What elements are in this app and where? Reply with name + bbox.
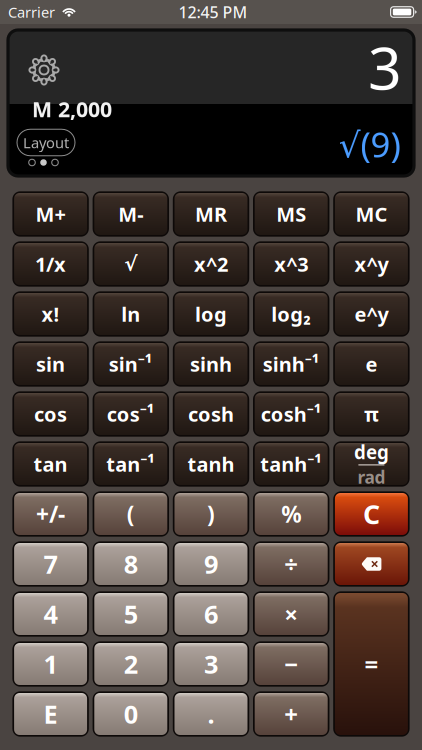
staticText: .	[207, 697, 214, 731]
button[interactable]: 9	[174, 543, 247, 585]
staticText: ÷	[284, 548, 298, 580]
button[interactable]: deg	[335, 443, 408, 485]
staticText: +	[284, 698, 298, 730]
staticText: sin	[36, 351, 65, 377]
button[interactable]: cosh⁻¹	[255, 393, 328, 435]
button[interactable]: Layout	[17, 129, 75, 156]
button[interactable]: sin	[14, 343, 87, 385]
button[interactable]: 0	[94, 693, 167, 735]
staticText: 4	[44, 597, 58, 631]
staticText: −	[284, 648, 298, 680]
button[interactable]: π	[335, 393, 408, 435]
staticText: log₂	[271, 301, 311, 327]
staticText: e	[365, 351, 377, 377]
staticText: 8	[124, 547, 138, 581]
staticText: π	[364, 401, 379, 427]
button[interactable]: ÷	[255, 543, 328, 585]
button[interactable]: 8	[94, 543, 167, 585]
staticText: √	[124, 253, 137, 275]
button[interactable]: ×	[255, 593, 328, 635]
staticText: C	[363, 496, 380, 532]
staticText: √(9)	[338, 121, 400, 167]
button[interactable]: sin⁻¹	[94, 343, 167, 385]
button[interactable]: (	[94, 493, 167, 535]
button[interactable]: log₂	[255, 293, 328, 335]
staticText: cos⁻¹	[107, 401, 155, 427]
staticText: rad	[357, 465, 385, 488]
button[interactable]: √	[94, 243, 167, 285]
button[interactable]: E	[14, 693, 87, 735]
staticText: 1	[44, 647, 58, 681]
staticText: M 2,000	[32, 95, 112, 123]
button[interactable]: x^3	[255, 243, 328, 285]
staticText: 9	[204, 547, 218, 581]
staticText: M-	[118, 201, 143, 227]
staticText: )	[207, 499, 215, 529]
button[interactable]: %	[255, 493, 328, 535]
staticText: e^y	[354, 301, 388, 327]
button[interactable]: MC	[335, 193, 408, 235]
staticText: ×	[284, 598, 298, 630]
button[interactable]: Settings	[24, 50, 64, 90]
button[interactable]: 5	[94, 593, 167, 635]
button[interactable]: x^2	[174, 243, 247, 285]
button[interactable]: tan	[14, 443, 87, 485]
staticText: cosh	[188, 401, 234, 427]
staticText: tan⁻¹	[106, 451, 155, 477]
button[interactable]: M-	[94, 193, 167, 235]
button[interactable]: +	[255, 693, 328, 735]
button[interactable]: +/-	[14, 493, 87, 535]
button[interactable]: x^y	[335, 243, 408, 285]
button[interactable]: MR	[174, 193, 247, 235]
button[interactable]: cosh	[174, 393, 247, 435]
button[interactable]: C	[335, 493, 408, 535]
staticText: 3	[368, 28, 402, 106]
button[interactable]: M+	[14, 193, 87, 235]
staticText: 3	[204, 647, 218, 681]
staticText: cosh⁻¹	[261, 401, 322, 427]
button[interactable]: 6	[174, 593, 247, 635]
button[interactable]: x!	[14, 293, 87, 335]
staticText: ln	[121, 301, 140, 327]
button[interactable]: tanh⁻¹	[255, 443, 328, 485]
button[interactable]: e	[335, 343, 408, 385]
button[interactable]: )	[174, 493, 247, 535]
button[interactable]: 4	[14, 593, 87, 635]
staticText: sin⁻¹	[109, 351, 153, 377]
button[interactable]: MS	[255, 193, 328, 235]
button[interactable]: 2	[94, 643, 167, 685]
button[interactable]: cos⁻¹	[94, 393, 167, 435]
staticText: MS	[276, 201, 306, 227]
button[interactable]: tanh	[174, 443, 247, 485]
button[interactable]: 3	[174, 643, 247, 685]
staticText: deg	[354, 439, 389, 464]
staticText: E	[44, 697, 58, 731]
staticText: tan	[34, 451, 68, 477]
button[interactable]: sinh⁻¹	[255, 343, 328, 385]
button[interactable]: =	[335, 593, 408, 735]
staticText: 5	[124, 597, 138, 631]
staticText: sinh	[190, 351, 232, 377]
staticText: 7	[44, 547, 58, 581]
button[interactable]: e^y	[335, 293, 408, 335]
staticText: x^3	[274, 251, 308, 277]
button[interactable]: Delete	[335, 543, 408, 585]
button[interactable]: −	[255, 643, 328, 685]
staticText: sinh⁻¹	[263, 351, 320, 377]
staticText: MR	[195, 201, 227, 227]
button[interactable]: .	[174, 693, 247, 735]
button[interactable]: 7	[14, 543, 87, 585]
staticText: log	[195, 301, 227, 327]
staticText: 12:45 PM	[178, 1, 247, 23]
button[interactable]: sinh	[174, 343, 247, 385]
staticText: =	[364, 648, 378, 680]
button[interactable]: log	[174, 293, 247, 335]
button[interactable]: ln	[94, 293, 167, 335]
staticText: MC	[355, 201, 387, 227]
staticText: tanh	[187, 451, 234, 477]
button[interactable]: 1	[14, 643, 87, 685]
button[interactable]: cos	[14, 393, 87, 435]
button[interactable]: tan⁻¹	[94, 443, 167, 485]
button[interactable]: 1/x	[14, 243, 87, 285]
staticText: 0	[124, 697, 138, 731]
